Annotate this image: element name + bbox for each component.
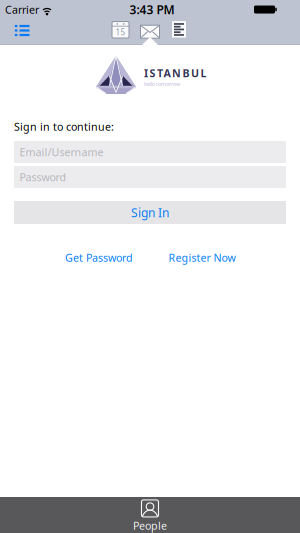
button[interactable]: Register Now bbox=[168, 250, 235, 265]
button[interactable] bbox=[7, 18, 36, 43]
button[interactable]: Sign In bbox=[14, 201, 286, 224]
staticText: 15 bbox=[115, 27, 125, 37]
button[interactable]: Email/Username bbox=[14, 141, 286, 163]
staticText: Register Now bbox=[168, 250, 235, 265]
staticText: Sign in to continue: bbox=[14, 119, 114, 134]
button[interactable]: Get Password bbox=[65, 250, 133, 265]
button[interactable] bbox=[172, 21, 186, 38]
button[interactable]: 15 bbox=[112, 22, 129, 38]
staticText: Carrier bbox=[5, 2, 39, 17]
button[interactable]: Password bbox=[14, 166, 286, 188]
staticText: ISTANBUL bbox=[144, 66, 206, 80]
button[interactable] bbox=[140, 25, 159, 38]
staticText: Email/Username bbox=[19, 145, 103, 159]
staticText: Password bbox=[19, 170, 66, 184]
staticText: 3:43 PM bbox=[129, 1, 174, 17]
staticText: Sign In bbox=[131, 204, 169, 220]
button[interactable]: People bbox=[133, 499, 167, 533]
staticText: Get Password bbox=[65, 250, 133, 265]
staticText: hello tomorrow bbox=[144, 80, 180, 88]
staticText: People bbox=[133, 518, 167, 533]
